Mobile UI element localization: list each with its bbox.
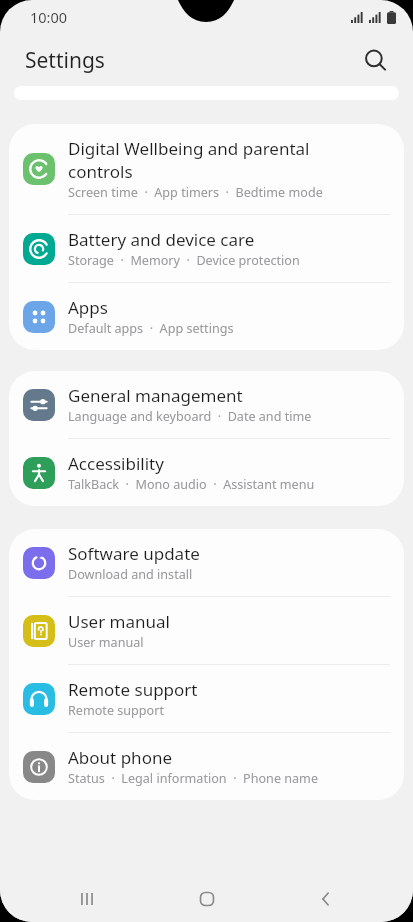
staticText: TalkBack · Mono audio · Assistant menu (68, 476, 315, 493)
button[interactable]: Digital Wellbeing and parental controls (9, 124, 404, 214)
staticText: Software update (68, 542, 200, 565)
staticText: 10:00 (30, 7, 68, 27)
staticText: Accessibility (68, 452, 164, 475)
staticText: Digital Wellbeing and parental controls (68, 137, 310, 183)
button[interactable]: Home (174, 876, 240, 922)
staticText: Settings (25, 46, 105, 75)
button[interactable]: Accessibility (9, 439, 404, 506)
staticText: User manual (68, 610, 170, 633)
staticText: User manual (68, 634, 144, 651)
staticText: Remote support (68, 702, 164, 719)
staticText: Storage · Memory · Device protection (68, 252, 300, 269)
button[interactable]: Software update (9, 529, 404, 596)
button[interactable]: Apps (9, 283, 404, 350)
button[interactable]: User manual (9, 597, 404, 664)
staticText: Download and install (68, 566, 193, 583)
staticText: General management (68, 384, 243, 407)
staticText: Status · Legal information · Phone name (68, 770, 318, 787)
button[interactable]: About phone (9, 733, 404, 800)
button[interactable]: General management (9, 371, 404, 438)
staticText: Screen time · App timers · Bedtime mode (68, 184, 323, 201)
button[interactable]: Recent apps (54, 876, 120, 922)
button[interactable]: Battery and device care (9, 215, 404, 282)
staticText: Remote support (68, 678, 198, 701)
staticText: Battery and device care (68, 228, 255, 251)
button[interactable]: Back (293, 876, 359, 922)
staticText: About phone (68, 746, 173, 769)
staticText: Default apps · App settings (68, 320, 234, 337)
staticText: Apps (68, 296, 108, 319)
button[interactable]: Remote support (9, 665, 404, 732)
button[interactable]: Search (353, 38, 397, 82)
staticText: Language and keyboard · Date and time (68, 408, 312, 425)
